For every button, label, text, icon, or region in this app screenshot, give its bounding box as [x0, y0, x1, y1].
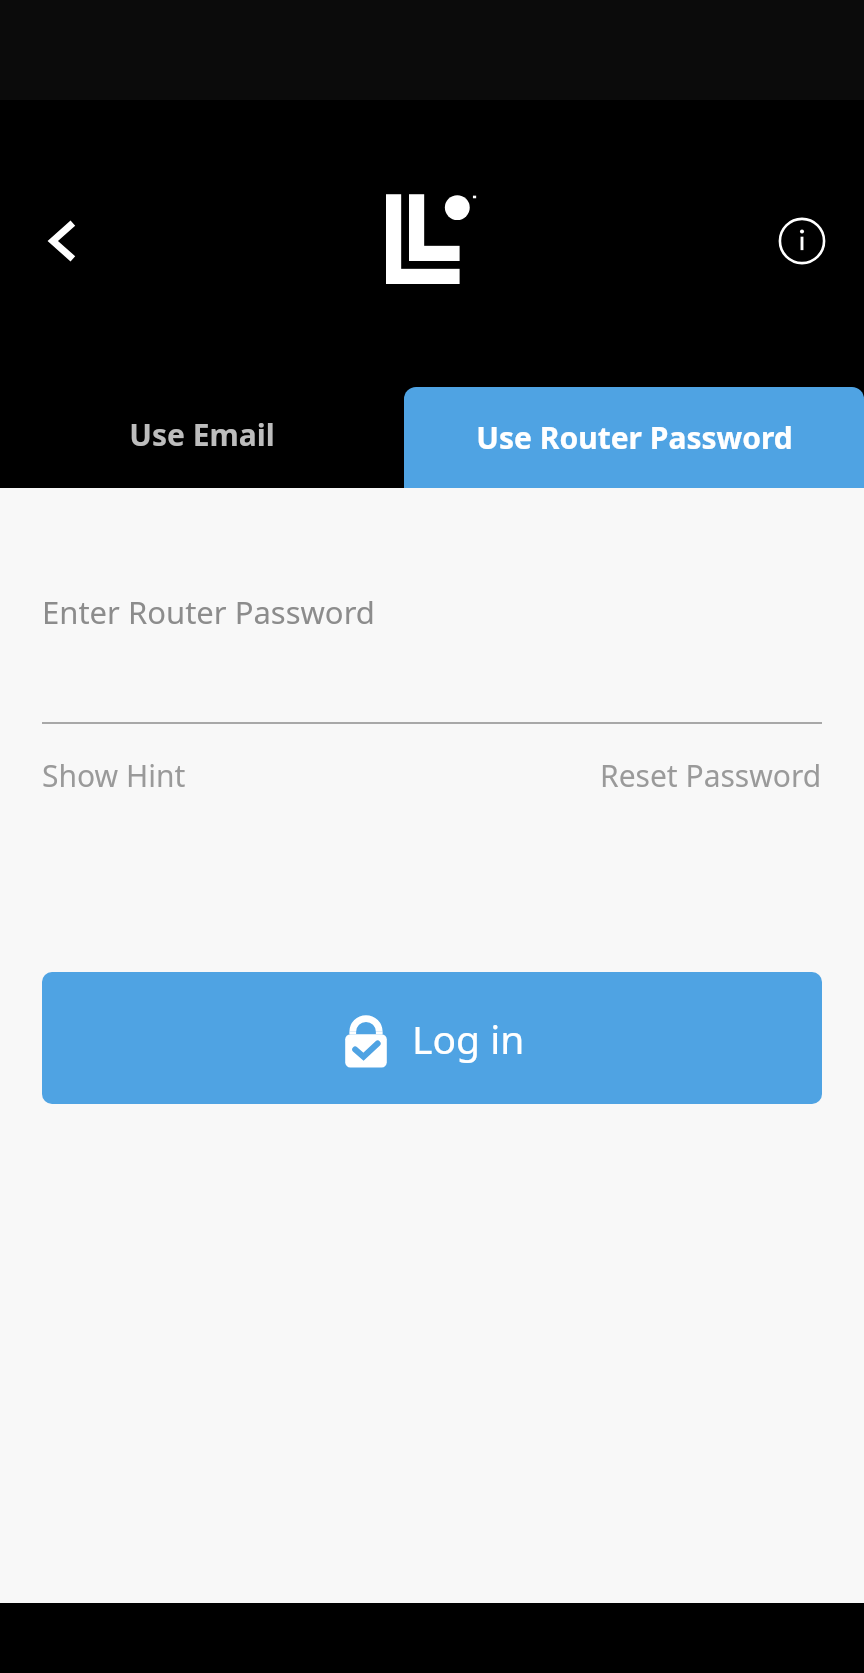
- staticText: Reset Password: [600, 755, 822, 796]
- button[interactable]: Information: [760, 199, 844, 283]
- button[interactable]: Back: [20, 199, 104, 283]
- staticText: Enter Router Password: [42, 591, 375, 633]
- staticText: Use Router Password: [476, 417, 793, 458]
- button[interactable]: Use Router Password: [404, 387, 864, 488]
- staticText: Use Email: [129, 414, 275, 455]
- button[interactable]: Use Email: [0, 381, 404, 488]
- button[interactable]: Show Hint: [42, 746, 186, 804]
- staticText: Show Hint: [42, 755, 186, 796]
- button[interactable]: Reset Password: [600, 746, 822, 804]
- staticText: Log in: [412, 1012, 525, 1065]
- button[interactable]: Enter Router Password: [42, 576, 822, 648]
- button[interactable]: Log in: [42, 972, 822, 1104]
